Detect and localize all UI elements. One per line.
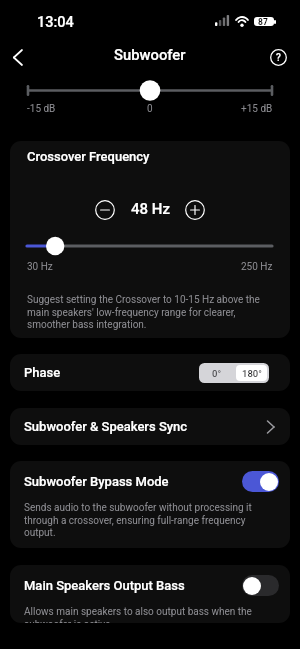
button[interactable]: Subwoofer & Speakers Sync (10, 408, 290, 445)
staticText: 180° (242, 368, 262, 379)
staticText: -15 dB (27, 103, 56, 115)
staticText: Subwoofer & Speakers Sync (24, 419, 188, 434)
staticText: Sends audio to the subwoofer without pro… (24, 502, 269, 538)
button[interactable]: 180° (236, 365, 267, 381)
button[interactable]: 0° (199, 363, 234, 383)
button[interactable]: Back (5, 45, 29, 69)
button[interactable]: Subwoofer Bypass Mode (242, 471, 279, 492)
button[interactable]: Help (266, 45, 290, 69)
staticText: 250 Hz (241, 261, 273, 273)
staticText: +15 dB (241, 103, 273, 115)
button[interactable]: Decrease frequency (95, 200, 115, 220)
staticText: Subwoofer (114, 46, 186, 63)
button[interactable]: Increase frequency (185, 200, 205, 220)
staticText: 0° (212, 368, 222, 379)
staticText: ? (276, 52, 281, 64)
staticText: Suggest setting the Crossover to 10-15 H… (27, 294, 272, 330)
staticText: Allows main speakers to also output bass… (24, 606, 269, 623)
staticText: 87 (258, 17, 268, 26)
staticText: Subwoofer Bypass Mode (24, 474, 169, 489)
staticText: 48 Hz (131, 200, 170, 218)
staticText: Phase (24, 365, 61, 380)
staticText: Crossover Frequency (27, 149, 150, 164)
staticText: 30 Hz (27, 261, 53, 273)
staticText: 0 (147, 103, 153, 115)
staticText: Main Speakers Output Bass (24, 578, 185, 593)
button[interactable]: Phase (10, 354, 290, 391)
button[interactable]: Main Speakers Output Bass (242, 575, 279, 596)
staticText: 13:04 (37, 14, 74, 31)
